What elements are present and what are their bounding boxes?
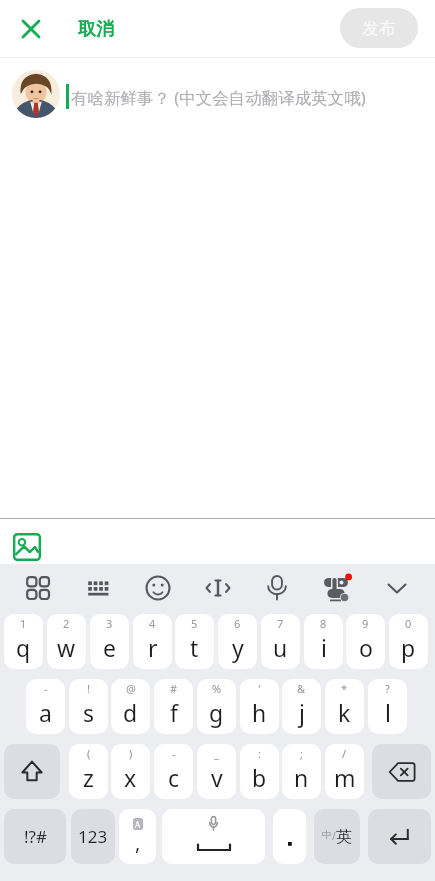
staticText: ! (87, 681, 90, 696)
button[interactable]: * (325, 679, 364, 734)
button[interactable]: % (197, 679, 236, 734)
staticText: k (338, 697, 351, 728)
staticText: * (341, 681, 348, 696)
button[interactable] (77, 567, 119, 609)
staticText: j (299, 697, 305, 728)
button[interactable]: ( (69, 744, 108, 799)
button[interactable]: 9 (346, 614, 385, 669)
button[interactable]: ; (282, 744, 321, 799)
staticText: f (170, 697, 178, 728)
button[interactable] (256, 567, 298, 609)
staticText: o (359, 632, 373, 663)
staticText: g (209, 697, 224, 728)
staticText: 9 (362, 616, 369, 631)
staticText: ' (258, 681, 261, 696)
staticText: b (252, 762, 267, 793)
button[interactable]: 6 (218, 614, 257, 669)
button[interactable]: @ (111, 679, 150, 734)
staticText: ( (87, 746, 91, 761)
button[interactable]: _ (197, 744, 236, 799)
button[interactable] (17, 567, 59, 609)
button[interactable] (376, 567, 418, 609)
button[interactable] (372, 744, 431, 799)
button[interactable]: ! (69, 679, 108, 734)
staticText: 4 (149, 616, 156, 631)
staticText: 3 (106, 616, 113, 631)
button[interactable] (316, 567, 358, 609)
button[interactable]: - (154, 744, 193, 799)
button[interactable]: 2 (47, 614, 86, 669)
staticText: ; (300, 746, 303, 761)
button[interactable] (137, 567, 179, 609)
staticText: - (44, 681, 48, 696)
button[interactable] (197, 567, 239, 609)
staticText: l (385, 697, 391, 728)
staticText: n (294, 762, 309, 793)
staticText: 取消 (78, 18, 114, 41)
staticText: 有啥新鲜事？ (中文会自动翻译成英文哦) (71, 86, 366, 109)
button[interactable]: ) (111, 744, 150, 799)
staticText: # (170, 681, 178, 696)
button[interactable]: : (240, 744, 279, 799)
staticText: 1 (20, 616, 27, 631)
staticText: e (103, 632, 116, 663)
button[interactable]: 发布 (340, 8, 418, 48)
staticText: A (135, 819, 141, 830)
staticText: z (83, 762, 94, 793)
button[interactable]: 8 (304, 614, 343, 669)
staticText: % (212, 681, 222, 696)
button[interactable]: 5 (175, 614, 214, 669)
button[interactable]: 7 (261, 614, 300, 669)
staticText: s (83, 697, 95, 728)
staticText: m (334, 762, 356, 793)
button[interactable]: # (154, 679, 193, 734)
staticText: : (258, 746, 261, 761)
button[interactable]: - (26, 679, 65, 734)
staticText: u (273, 632, 288, 663)
staticText: i (321, 632, 327, 663)
button[interactable] (12, 10, 50, 48)
button[interactable] (6, 526, 48, 568)
button[interactable] (4, 744, 60, 799)
button[interactable]: A (119, 809, 156, 864)
staticText: 8 (320, 616, 327, 631)
staticText: c (168, 762, 180, 793)
button[interactable]: 中 (314, 809, 360, 864)
staticText: h (252, 697, 267, 728)
button[interactable]: 4 (133, 614, 172, 669)
button[interactable] (273, 809, 306, 864)
staticText: / (342, 746, 347, 761)
button[interactable]: 1 (4, 614, 43, 669)
staticText: !?# (24, 825, 47, 848)
staticText: 0 (405, 616, 412, 631)
staticText: v (211, 762, 223, 793)
button[interactable]: & (282, 679, 321, 734)
button[interactable]: 123 (71, 809, 115, 864)
staticText: 6 (234, 616, 241, 631)
staticText: - (172, 746, 176, 761)
staticText: w (57, 632, 76, 663)
staticText: ? (385, 681, 390, 696)
button[interactable] (162, 809, 265, 864)
staticText: y (232, 632, 244, 663)
staticText: t (190, 632, 199, 663)
staticText: d (123, 697, 138, 728)
button[interactable] (368, 809, 431, 864)
button[interactable]: 取消 (70, 10, 122, 48)
staticText: a (39, 697, 52, 728)
staticText: 5 (191, 616, 198, 631)
staticText: 发布 (362, 18, 396, 39)
button[interactable]: ' (240, 679, 279, 734)
button[interactable]: ? (368, 679, 407, 734)
button[interactable]: 3 (90, 614, 129, 669)
staticText: , (135, 829, 141, 856)
button[interactable]: 0 (389, 614, 428, 669)
staticText: / (332, 829, 336, 843)
staticText: ) (129, 746, 133, 761)
button[interactable]: !?# (4, 809, 66, 864)
staticText: 英 (336, 827, 352, 847)
staticText: r (148, 632, 158, 663)
button[interactable]: / (325, 744, 364, 799)
staticText: q (16, 632, 31, 663)
staticText: p (401, 632, 416, 663)
